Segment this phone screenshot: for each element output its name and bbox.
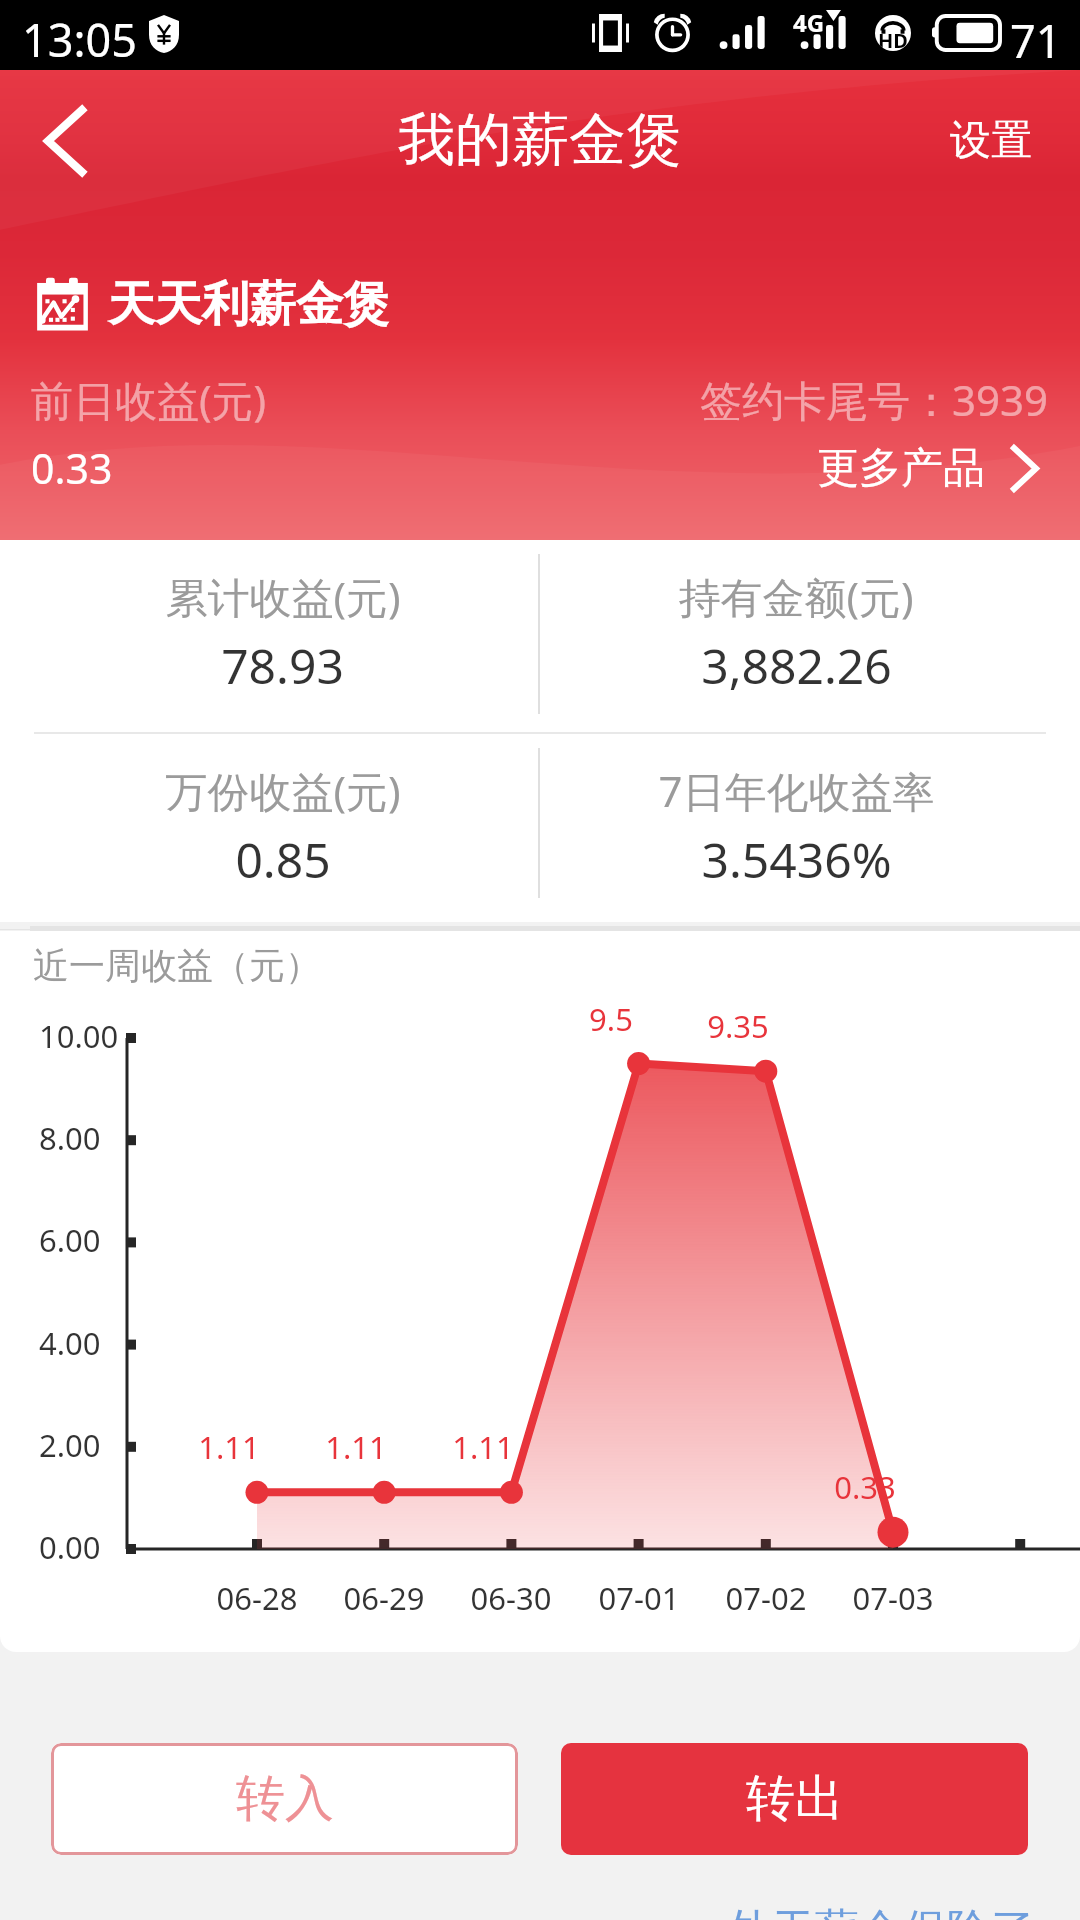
staticText: 2.00: [39, 1424, 101, 1466]
staticText: 0.33: [795, 1466, 935, 1508]
button[interactable]: 累计收益(元): [26, 540, 539, 731]
staticText: 4G: [793, 6, 825, 39]
staticText: 1.11: [413, 1426, 553, 1468]
staticText: 71: [1010, 10, 1062, 71]
staticText: 06-28: [187, 1577, 327, 1619]
button[interactable]: 设置: [910, 70, 1080, 212]
staticText: 1.11: [286, 1426, 426, 1468]
button[interactable]: 更多产品: [817, 442, 1036, 495]
staticText: 天天利薪金煲: [108, 275, 390, 334]
staticText: HD: [878, 27, 908, 51]
staticText: 3,882.26: [701, 633, 892, 698]
staticText: 持有金额(元): [678, 568, 914, 625]
staticText: 10.00: [39, 1015, 119, 1057]
staticText: 转出: [746, 1768, 844, 1830]
staticText: 1.11: [159, 1426, 299, 1468]
staticText: 78.93: [221, 633, 344, 698]
staticText: 8.00: [39, 1117, 101, 1159]
staticText: 13:05: [22, 9, 138, 70]
staticText: 我的薪金煲: [398, 104, 683, 176]
staticText: 近一周收益（元）: [33, 943, 321, 988]
staticText: 06-29: [314, 1577, 454, 1619]
staticText: 转入: [236, 1768, 334, 1830]
staticText: 4.00: [39, 1322, 101, 1364]
staticText: 6.00: [39, 1219, 101, 1261]
button[interactable]: 万份收益(元): [26, 734, 539, 925]
staticText: 更多产品: [817, 442, 985, 495]
staticText: 设置: [950, 115, 1032, 167]
staticText: 3.5436%: [701, 827, 892, 892]
staticText: 7日年化收益率: [658, 762, 935, 819]
button[interactable]: Back: [0, 70, 130, 212]
staticText: 0.00: [39, 1526, 101, 1568]
staticText: 07-01: [569, 1577, 709, 1619]
staticText: 06-30: [441, 1577, 581, 1619]
staticText: 累计收益(元): [165, 568, 401, 625]
button[interactable]: 持有金额(元): [539, 540, 1053, 731]
staticText: 签约卡尾号：3939: [700, 371, 1049, 428]
staticText: 07-03: [823, 1577, 963, 1619]
button[interactable]: 7日年化收益率: [539, 734, 1053, 925]
staticText: 前日收益(元): [31, 371, 267, 428]
staticText: 9.5: [541, 998, 681, 1040]
staticText: 9.35: [668, 1005, 808, 1047]
button[interactable]: 转出: [561, 1743, 1028, 1855]
button[interactable]: 外干薪金保险了: [727, 1903, 1035, 1920]
staticText: 0.85: [235, 827, 331, 892]
staticText: 0.33: [31, 440, 113, 496]
button[interactable]: 转入: [51, 1743, 518, 1855]
staticText: 07-02: [696, 1577, 836, 1619]
staticText: 万份收益(元): [165, 762, 401, 819]
